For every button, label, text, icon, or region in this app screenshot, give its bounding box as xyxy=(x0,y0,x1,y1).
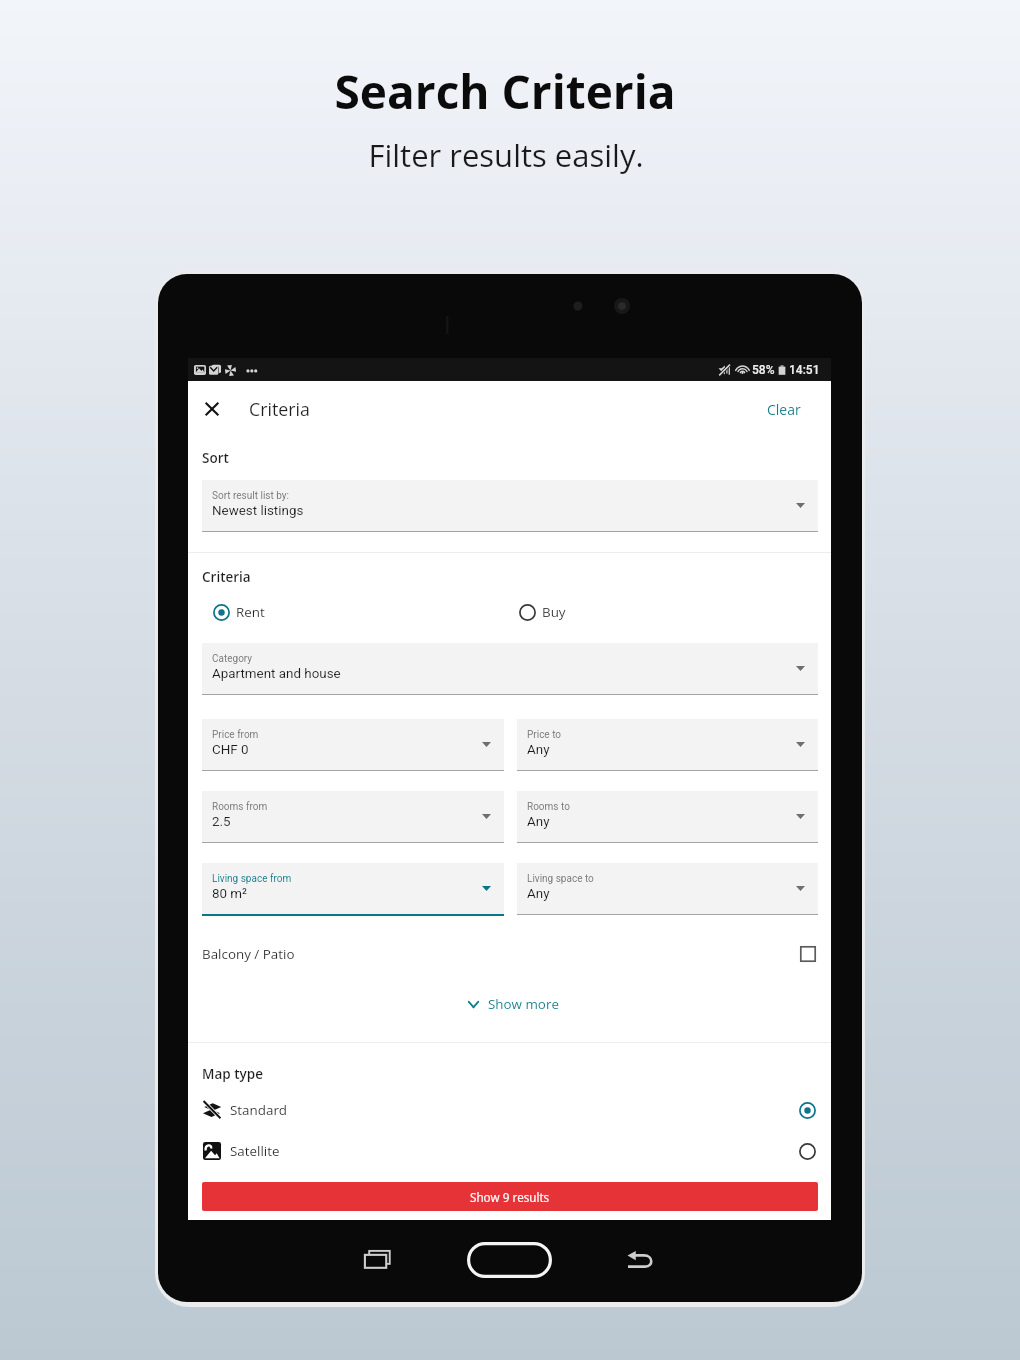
staticText: Newest listings xyxy=(212,503,304,519)
button[interactable]: Rooms from xyxy=(202,791,504,843)
staticText: Criteria xyxy=(202,568,251,586)
staticText: Rent xyxy=(236,603,265,621)
staticText: Search Criteria xyxy=(0,60,1015,123)
button[interactable]: Sort result list by: xyxy=(202,480,818,532)
button[interactable]: Living space from xyxy=(202,863,504,916)
staticText: Price to xyxy=(527,729,562,741)
button[interactable]: Category xyxy=(202,643,818,695)
staticText: Sort xyxy=(202,449,229,467)
staticText: 2.5 xyxy=(212,814,231,830)
button[interactable]: Buy xyxy=(519,596,799,628)
button[interactable]: Home xyxy=(463,1236,556,1284)
button[interactable]: Clear xyxy=(733,389,801,429)
staticText: 58% xyxy=(752,363,775,377)
staticText: Any xyxy=(527,886,550,902)
staticText: Sort result list by: xyxy=(212,490,289,502)
staticText: Satellite xyxy=(230,1142,280,1160)
button[interactable]: Rent xyxy=(213,596,493,628)
staticText: Map type xyxy=(202,1065,263,1083)
button[interactable]: Balcony / Patio xyxy=(188,934,831,974)
button[interactable]: Living space to xyxy=(517,863,818,915)
staticText: Standard xyxy=(230,1101,288,1119)
button[interactable]: Satellite xyxy=(188,1131,831,1171)
button[interactable]: Show more xyxy=(188,986,831,1022)
staticText: Living space to xyxy=(527,873,594,885)
button[interactable]: Rooms to xyxy=(517,791,818,843)
staticText: Filter results easily. xyxy=(0,134,1016,176)
staticText: CHF 0 xyxy=(212,742,249,758)
staticText: Show more xyxy=(488,995,559,1013)
button[interactable]: Back xyxy=(624,1247,655,1271)
staticText: Rooms from xyxy=(212,801,268,813)
staticText: Category xyxy=(212,653,253,665)
staticText: Rooms to xyxy=(527,801,570,813)
staticText: 80 m² xyxy=(212,886,248,902)
button[interactable]: Recents xyxy=(360,1247,393,1271)
staticText: 14:51 xyxy=(789,363,820,377)
staticText: Clear xyxy=(767,400,801,419)
staticText: Price from xyxy=(212,729,259,741)
staticText: Buy xyxy=(542,603,566,621)
button[interactable]: Price from xyxy=(202,719,504,771)
button[interactable]: Price to xyxy=(517,719,818,771)
staticText: Criteria xyxy=(249,397,310,421)
button[interactable]: Standard xyxy=(188,1090,831,1130)
staticText: Show 9 results xyxy=(470,1189,550,1205)
button[interactable]: Show 9 results xyxy=(202,1182,818,1211)
staticText: Balcony / Patio xyxy=(202,945,295,963)
button[interactable]: Close xyxy=(188,381,236,437)
staticText: Any xyxy=(527,814,550,830)
staticText: Apartment and house xyxy=(212,666,341,682)
staticText: Living space from xyxy=(212,873,292,885)
staticText: Any xyxy=(527,742,550,758)
